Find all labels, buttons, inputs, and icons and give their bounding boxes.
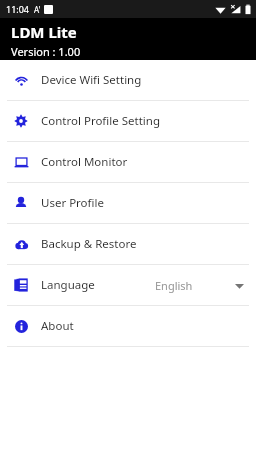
button[interactable]: User Profile [0, 183, 256, 223]
button[interactable]: Device Wifi Setting [0, 60, 256, 100]
staticText: Language [41, 277, 95, 293]
staticText: About [41, 318, 74, 334]
button[interactable]: Backup & Restore [0, 224, 256, 264]
button[interactable]: About [0, 306, 256, 346]
button[interactable]: Control Profile Setting [0, 101, 256, 141]
staticText: A' [34, 4, 41, 15]
staticText: Control Profile Setting [41, 113, 160, 129]
staticText: LDM Lite [11, 22, 77, 42]
button[interactable]: English [155, 278, 244, 293]
staticText: User Profile [41, 195, 104, 211]
staticText: Version : 1.00 [11, 44, 81, 59]
staticText: 11:04 [6, 3, 30, 15]
other: Open language dropdown [235, 283, 244, 289]
button[interactable]: Control Monitor [0, 142, 256, 182]
staticText: Control Monitor [41, 154, 128, 170]
button[interactable]: Language [0, 265, 256, 305]
staticText: English [155, 278, 193, 293]
staticText: Backup & Restore [41, 236, 137, 252]
staticText: Device Wifi Setting [41, 72, 142, 88]
